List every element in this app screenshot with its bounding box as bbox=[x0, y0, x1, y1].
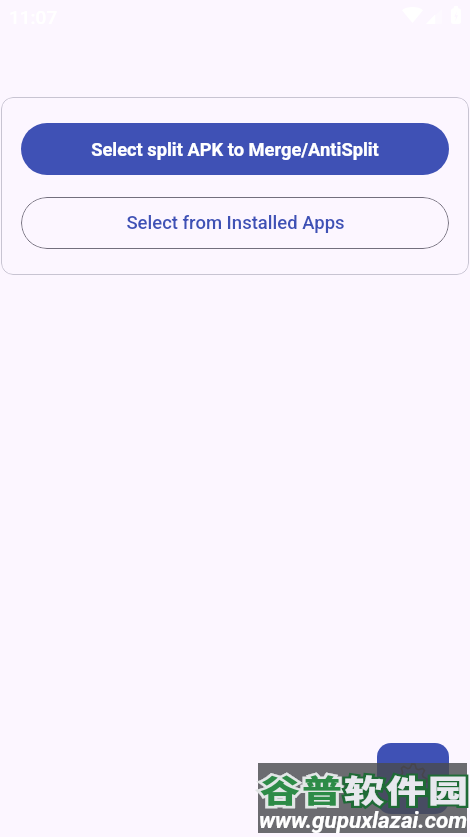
staticText: 谷普 bbox=[260, 766, 344, 811]
button[interactable]: Select from Installed Apps bbox=[21, 197, 449, 249]
button[interactable]: Settings bbox=[377, 743, 449, 814]
staticText: www.gupuxlazai.com bbox=[259, 807, 468, 833]
button[interactable]: Select split APK to Merge/AntiSplit bbox=[21, 123, 449, 175]
staticText: 11:07 bbox=[9, 6, 58, 28]
staticText: Select split APK to Merge/AntiSplit bbox=[91, 139, 379, 160]
staticText: 软件园 bbox=[344, 766, 470, 811]
staticText: 软件园 bbox=[344, 766, 470, 811]
staticText: Select from Installed Apps bbox=[126, 212, 345, 234]
staticText: 谷普 bbox=[260, 766, 344, 811]
